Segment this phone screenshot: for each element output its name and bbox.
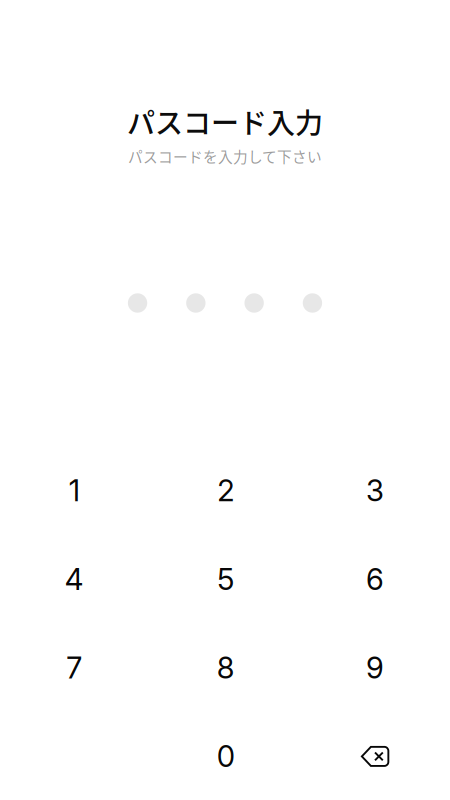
staticText: 7 <box>66 650 82 686</box>
staticText: 1 <box>69 473 80 508</box>
button[interactable]: 5 <box>152 535 300 623</box>
staticText: 3 <box>366 473 384 508</box>
button[interactable]: 0 <box>152 712 300 800</box>
staticText: パスコード入力 <box>127 101 323 142</box>
button[interactable]: Delete <box>301 712 449 800</box>
staticText: 5 <box>217 562 234 597</box>
staticText: パスコードを入力して下さい <box>128 145 322 167</box>
staticText: 2 <box>217 473 234 508</box>
button[interactable]: 1 <box>0 447 148 535</box>
staticText: 0 <box>217 739 235 774</box>
button[interactable]: 8 <box>152 624 300 712</box>
staticText: 4 <box>65 562 84 597</box>
button[interactable]: 3 <box>301 447 449 535</box>
button[interactable]: 9 <box>301 624 449 712</box>
staticText: 9 <box>366 650 384 686</box>
button[interactable]: 2 <box>152 447 300 535</box>
button[interactable]: 6 <box>301 535 449 623</box>
button[interactable]: 7 <box>0 624 148 712</box>
button[interactable]: 4 <box>0 535 148 623</box>
staticText: 8 <box>217 650 235 686</box>
staticText: 6 <box>366 562 384 597</box>
